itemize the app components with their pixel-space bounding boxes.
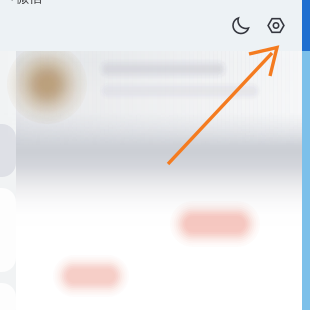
button[interactable]: Back to WeChat: [0, 0, 35, 12]
staticText: 微信: [16, 0, 42, 6]
button[interactable]: Settings: [260, 9, 292, 41]
button[interactable]: Night mode: [225, 9, 257, 41]
